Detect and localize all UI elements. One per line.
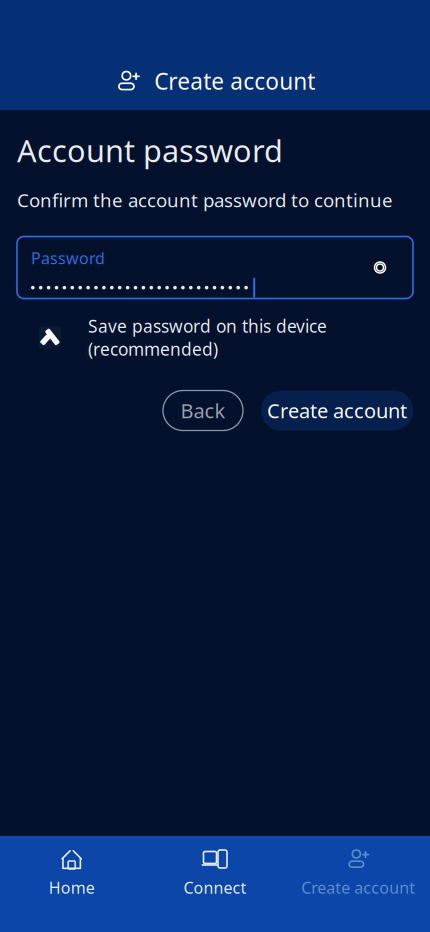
staticText: Create account	[301, 877, 415, 898]
button[interactable]: Connect	[143, 848, 287, 904]
staticText: Confirm the account password to continue	[17, 188, 393, 212]
staticText: Back	[180, 397, 225, 424]
staticText: Account password	[17, 130, 283, 171]
staticText: Password	[31, 247, 105, 269]
staticText: Create account	[154, 66, 315, 96]
staticText: Home	[49, 877, 95, 898]
button[interactable]: Back	[163, 390, 243, 430]
staticText: Connect	[183, 877, 246, 898]
staticText: Create account	[267, 397, 407, 424]
button[interactable]: Home	[0, 848, 143, 904]
button[interactable]: Show password	[361, 248, 399, 286]
staticText: Save password on this device (recommende…	[88, 314, 327, 360]
button[interactable]: Create account	[261, 390, 413, 430]
button[interactable]: Create account	[287, 848, 430, 904]
button[interactable]: Create account	[0, 0, 430, 110]
button[interactable]: Save password on this device (recommende…	[17, 320, 413, 354]
